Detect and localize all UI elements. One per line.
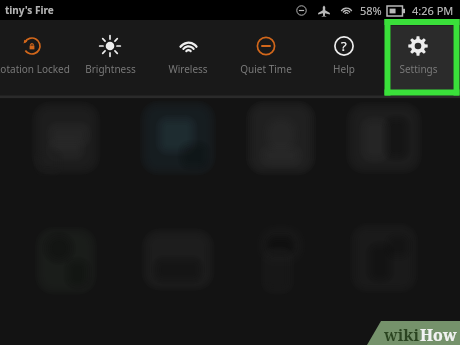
staticText: 4:26 PM	[412, 3, 454, 18]
staticText: Wireless	[168, 62, 208, 76]
staticText: wiki	[384, 324, 420, 345]
button[interactable]: Wireless	[149, 20, 227, 97]
button[interactable]: Rotation Locked	[0, 20, 71, 97]
staticText: Brightness	[85, 62, 136, 76]
staticText: Settings	[399, 62, 438, 76]
button[interactable]: Brightness	[71, 20, 149, 97]
staticText: Quiet Time	[240, 62, 292, 76]
button[interactable]: Quiet Time	[227, 20, 305, 97]
staticText: 58%	[360, 3, 382, 18]
staticText: ?	[341, 37, 347, 55]
button[interactable]: Settings	[383, 20, 453, 97]
staticText: Rotation Locked	[0, 62, 70, 76]
button[interactable]: ?	[305, 20, 383, 97]
staticText: How	[420, 324, 457, 345]
staticText: tiny's Fire	[5, 3, 54, 17]
staticText: Help	[333, 62, 355, 76]
